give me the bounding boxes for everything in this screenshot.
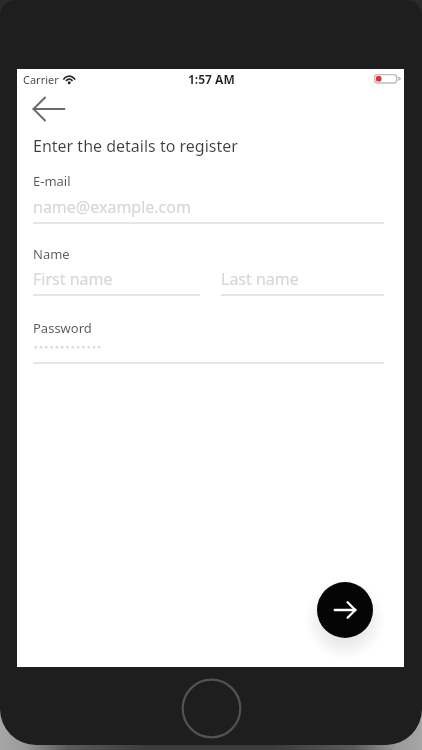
button[interactable]: Next [317,582,373,638]
staticText: E-mail [33,172,71,190]
button[interactable]: name@example.com [33,192,384,224]
button[interactable]: Last name [221,264,384,296]
staticText: Enter the details to register [33,135,238,157]
staticText: Last name [221,268,299,290]
staticText: Carrier [23,72,59,87]
staticText: Name [33,245,70,263]
button[interactable]: First name [33,264,200,296]
staticText: Password [33,319,92,337]
staticText: First name [33,268,113,290]
staticText: 1:57 AM [188,71,235,87]
button[interactable]: Password [33,338,384,364]
button[interactable]: Back [23,83,75,135]
staticText: name@example.com [33,196,191,218]
